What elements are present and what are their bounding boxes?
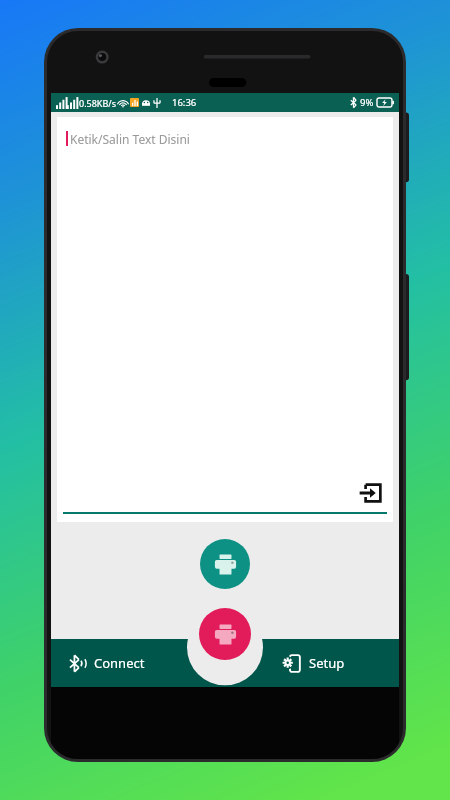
button[interactable]: Print	[199, 608, 251, 660]
button[interactable]: Print preview	[200, 539, 250, 589]
button[interactable]: Ketik/Salin Text Disini	[57, 117, 393, 522]
staticText: 9%	[360, 96, 374, 109]
staticText: Connect	[94, 654, 145, 672]
button[interactable]: Setup	[260, 639, 399, 687]
staticText: 0.58KB/s	[79, 97, 116, 109]
button[interactable]: Connect	[51, 639, 190, 687]
button[interactable]: Input text	[357, 480, 383, 506]
staticText: Setup	[309, 654, 345, 672]
staticText: 16:36	[172, 96, 197, 109]
staticText: Ketik/Salin Text Disini	[70, 131, 190, 147]
